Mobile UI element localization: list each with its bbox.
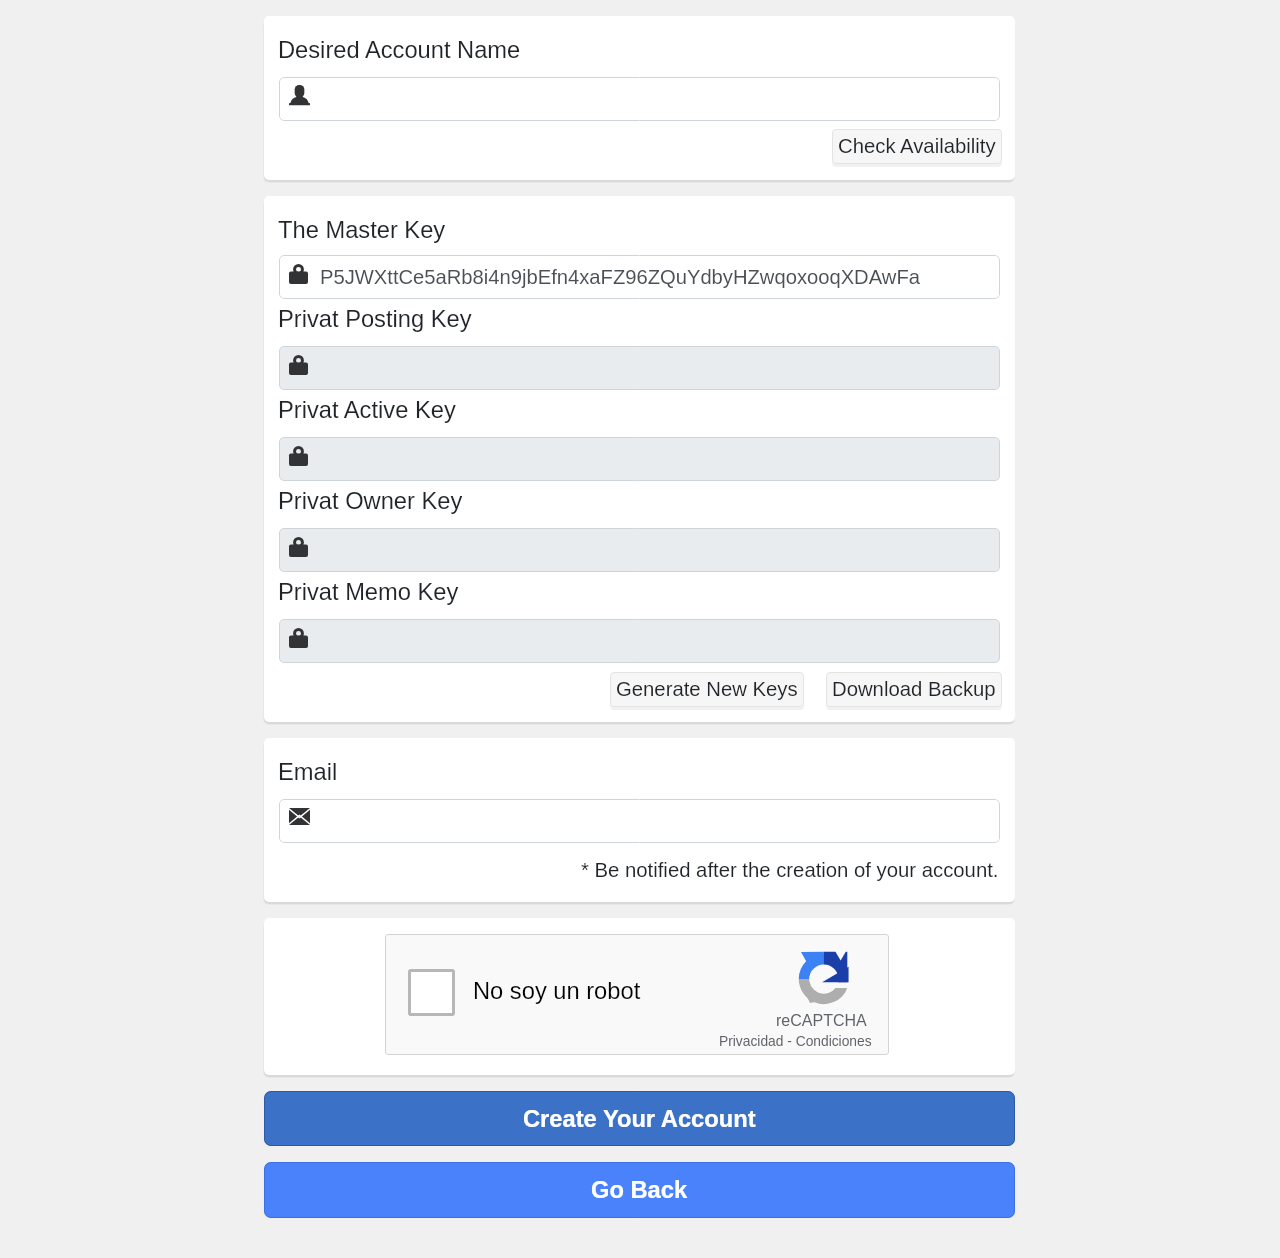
button[interactable]: Create Your Account: [264, 1091, 1015, 1146]
button[interactable]: Download Backup: [826, 672, 1002, 707]
button[interactable]: Email address: [279, 799, 1000, 843]
staticText: Generate New Keys: [616, 678, 798, 701]
staticText: Go Back: [591, 1177, 688, 1203]
button[interactable]: Generate New Keys: [610, 672, 804, 707]
staticText: Download Backup: [832, 681, 996, 704]
staticText: Generate New Keys: [616, 681, 798, 704]
button[interactable]: Privat posting key: [279, 346, 1000, 390]
button[interactable]: Desired account name: [279, 77, 1000, 121]
staticText: * Be notified after the creation of your…: [581, 859, 999, 882]
staticText: No soy un robot: [473, 978, 641, 1004]
staticText: reCAPTCHA: [776, 1012, 867, 1030]
button[interactable]: The master key: [279, 255, 1000, 299]
staticText: Desired Account Name: [278, 37, 521, 63]
staticText: Email: [278, 759, 338, 785]
staticText: Privat Posting Key: [278, 306, 472, 332]
staticText: Download Backup: [832, 678, 996, 701]
staticText: Privat Owner Key: [278, 488, 463, 514]
staticText: The Master Key: [278, 217, 446, 243]
staticText: Check Availability: [838, 135, 996, 158]
staticText: Privacidad - Condiciones: [719, 1034, 872, 1049]
button[interactable]: Go Back: [264, 1162, 1015, 1218]
button[interactable]: No soy un robot: [408, 969, 455, 1016]
button[interactable]: Check Availability: [832, 129, 1002, 164]
button[interactable]: reCAPTCHA verification: [385, 934, 889, 1055]
button[interactable]: Privat owner key: [279, 528, 1000, 572]
staticText: Create Your Account: [523, 1106, 756, 1132]
staticText: P5JWXttCe5aRb8i4n9jbEfn4xaFZ96ZQuYdbyHZw…: [320, 266, 920, 289]
staticText: Privat Memo Key: [278, 579, 459, 605]
staticText: Privat Active Key: [278, 397, 456, 423]
staticText: Check Availability: [838, 138, 996, 161]
button[interactable]: Privat active key: [279, 437, 1000, 481]
button[interactable]: Privat memo key: [279, 619, 1000, 663]
